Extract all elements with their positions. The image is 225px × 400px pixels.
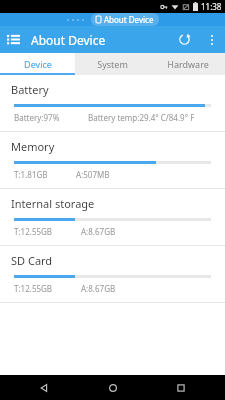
staticText: About Device bbox=[31, 32, 106, 48]
staticText: SD Card bbox=[11, 253, 53, 268]
staticText: Hardware bbox=[167, 58, 209, 70]
staticText: Battery:97% bbox=[14, 112, 60, 123]
staticText: Device bbox=[24, 58, 52, 70]
button[interactable]: Refresh bbox=[171, 26, 198, 53]
staticText: Battery temp:29.4° C/84.9° F bbox=[88, 112, 195, 123]
staticText: T:12.55GB bbox=[14, 283, 53, 294]
staticText: A:507MB bbox=[76, 169, 110, 180]
staticText: A:8.67GB bbox=[81, 226, 116, 237]
button[interactable]: System bbox=[75, 53, 150, 75]
staticText: 11:38 bbox=[201, 1, 222, 12]
button[interactable]: Device bbox=[0, 53, 75, 75]
staticText: Internal storage bbox=[11, 196, 95, 211]
button[interactable]: More options bbox=[198, 26, 225, 53]
staticText: About Device bbox=[104, 14, 154, 25]
button[interactable]: Back bbox=[19, 375, 69, 400]
staticText: T:12.55GB bbox=[14, 226, 53, 237]
staticText: T:1.81GB bbox=[14, 169, 48, 180]
staticText: Battery bbox=[11, 82, 49, 97]
button[interactable]: Hardware bbox=[150, 53, 225, 75]
button[interactable]: Open navigation menu bbox=[0, 26, 27, 53]
staticText: A:8.67GB bbox=[81, 283, 116, 294]
button[interactable]: Home bbox=[88, 375, 138, 400]
button[interactable]: Recent apps bbox=[156, 375, 206, 400]
staticText: Memory bbox=[11, 139, 55, 154]
staticText: System bbox=[97, 58, 128, 70]
